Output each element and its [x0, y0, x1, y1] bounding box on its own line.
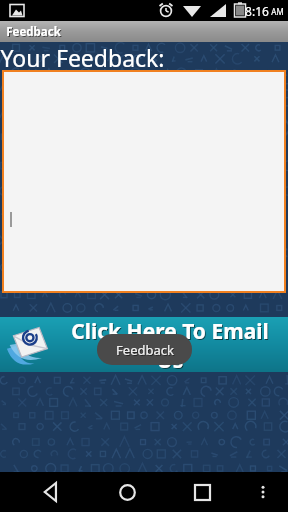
button[interactable]: More options	[246, 475, 280, 509]
button[interactable]: Click Here To Email Us	[0, 317, 288, 372]
staticText: Feedback	[6, 24, 61, 40]
staticText: Feedback	[116, 341, 174, 359]
staticText: Feedback	[7, 25, 62, 41]
staticText: 8:16	[245, 3, 269, 19]
button[interactable]: Feedback	[0, 21, 288, 42]
staticText: AM	[271, 6, 284, 17]
staticText: Your Feedback:	[0, 42, 165, 70]
button[interactable]: Recent apps	[182, 472, 222, 512]
button[interactable]: Back	[32, 472, 72, 512]
button[interactable]: Home	[107, 472, 147, 512]
staticText: Feedback	[117, 342, 175, 360]
staticText: Click Here To Email Us	[57, 318, 285, 373]
staticText: Click Here To Email Us	[56, 317, 284, 372]
